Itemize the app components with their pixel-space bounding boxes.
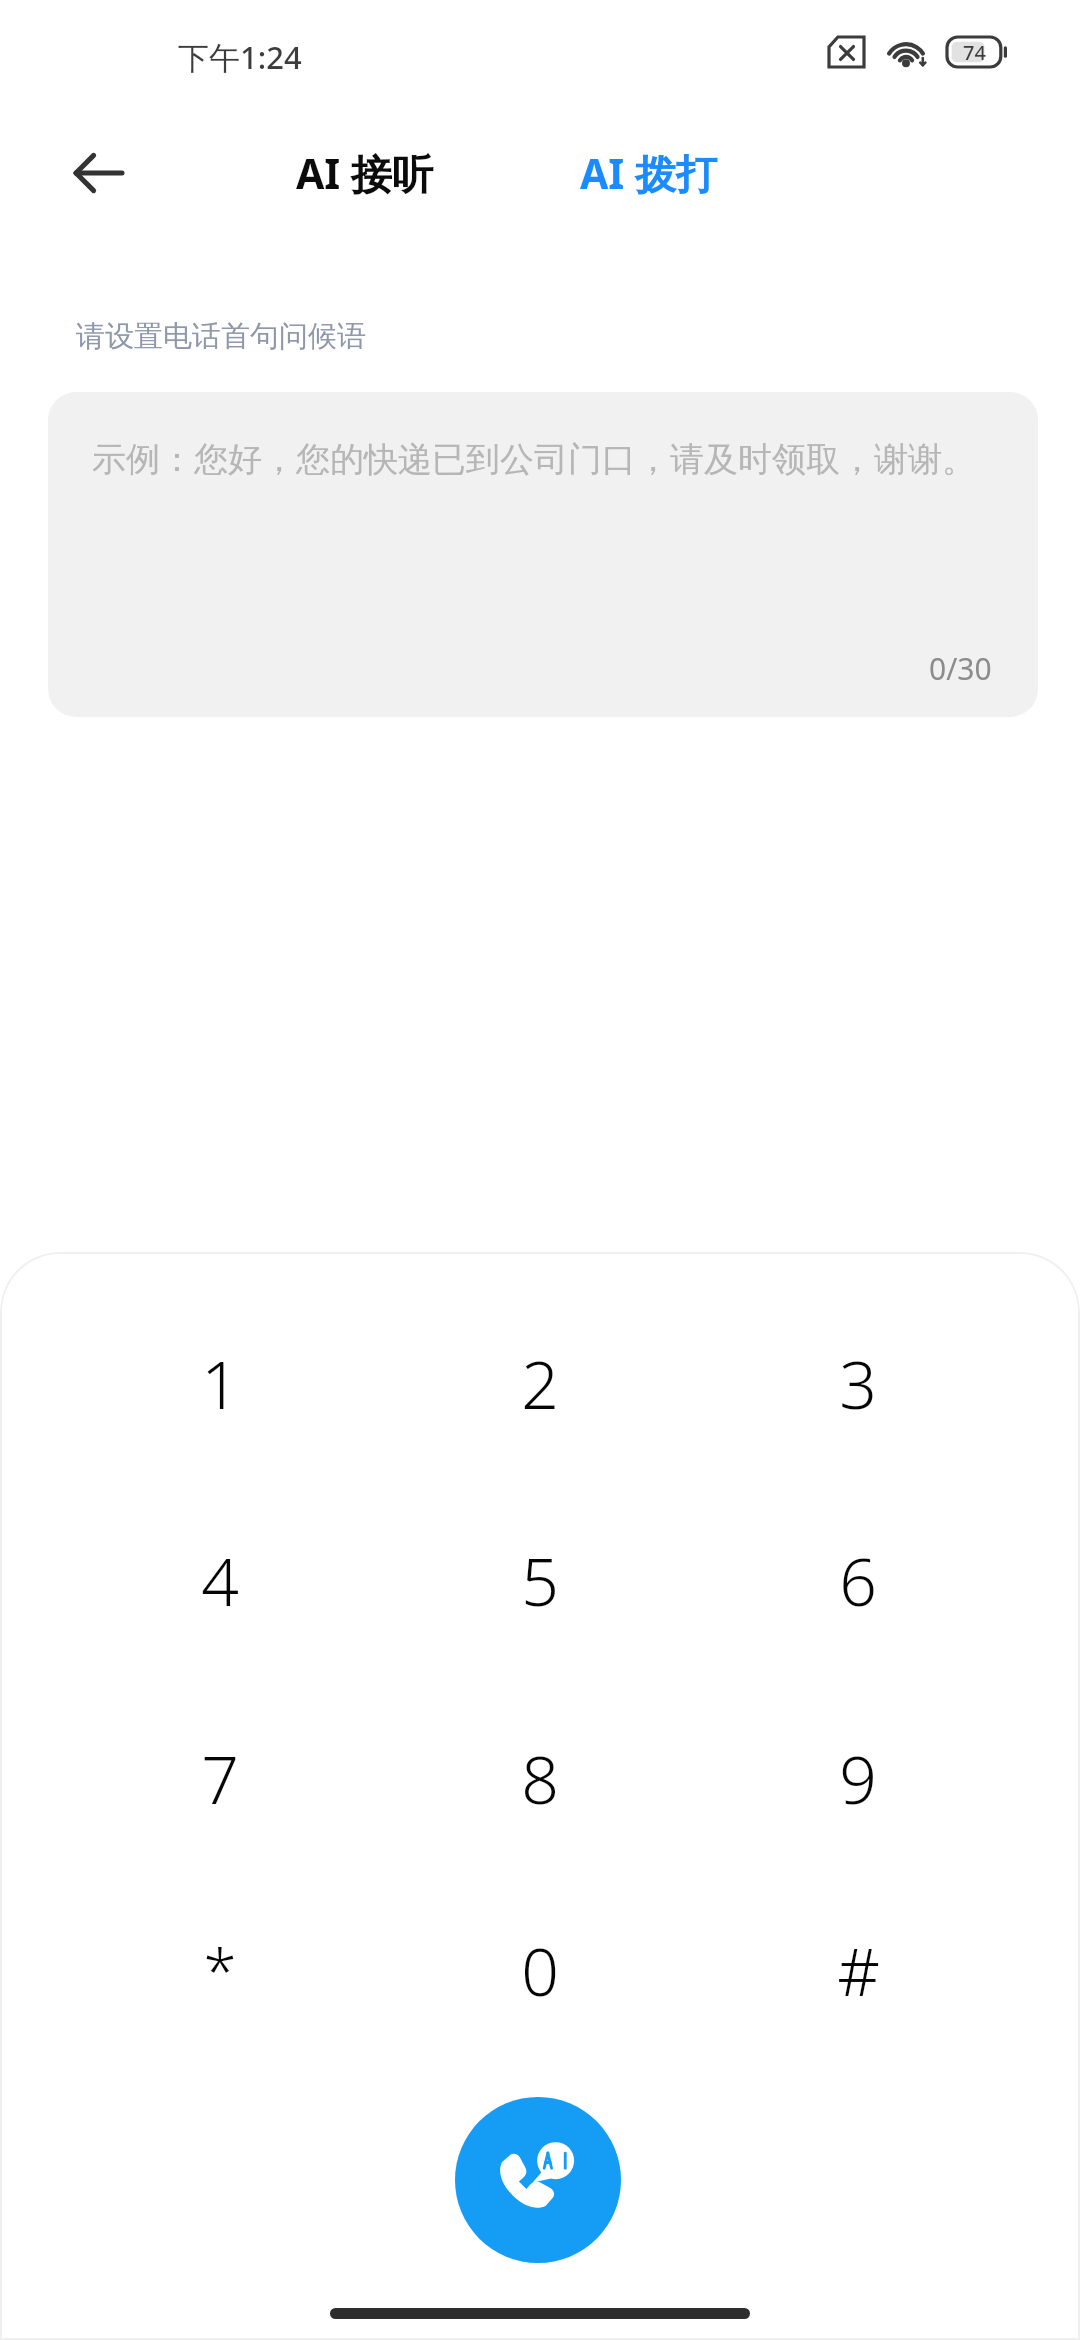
button[interactable]: 4 <box>110 1492 330 1668</box>
button[interactable]: 6 <box>748 1492 968 1668</box>
button[interactable]: 3 <box>748 1295 968 1471</box>
button[interactable]: 8 <box>430 1690 650 1866</box>
button[interactable]: 5 <box>430 1492 650 1668</box>
button[interactable]: 2 <box>430 1295 650 1471</box>
button[interactable]: # <box>748 1882 968 2058</box>
button[interactable]: 1 <box>110 1295 330 1471</box>
staticText: 3 <box>839 1338 877 1428</box>
staticText: 5 <box>521 1535 559 1625</box>
button[interactable]: * <box>110 1882 330 2058</box>
button[interactable]: 7 <box>110 1690 330 1866</box>
button[interactable]: AI call <box>455 2097 621 2263</box>
staticText: 6 <box>839 1535 877 1625</box>
staticText: 0 <box>521 1925 559 2015</box>
staticText: 9 <box>839 1733 877 1823</box>
staticText: 1 <box>201 1338 239 1428</box>
staticText: # <box>837 1925 880 2015</box>
button[interactable]: Back <box>58 132 140 214</box>
staticText: 0/30 <box>929 648 992 689</box>
staticText: 7 <box>201 1733 239 1823</box>
button[interactable]: 9 <box>748 1690 968 1866</box>
button[interactable]: AI 接听 <box>296 132 433 214</box>
staticText: 4 <box>201 1535 239 1625</box>
staticText: AI 拨打 <box>580 145 717 201</box>
staticText: 74 <box>963 39 986 66</box>
staticText: 请设置电话首句问候语 <box>76 318 366 355</box>
staticText: 2 <box>521 1338 559 1428</box>
staticText: 8 <box>521 1733 559 1823</box>
staticText: 示例：您好，您的快递已到公司门口，请及时领取，谢谢。 <box>92 438 992 481</box>
button[interactable]: 示例：您好，您的快递已到公司门口，请及时领取，谢谢。 <box>48 392 1038 717</box>
staticText: 下午1:24 <box>178 36 302 78</box>
button[interactable]: AI 拨打 <box>580 132 717 214</box>
staticText: AI 接听 <box>296 145 433 201</box>
button[interactable]: 0 <box>430 1882 650 2058</box>
staticText: * <box>203 1929 237 2011</box>
